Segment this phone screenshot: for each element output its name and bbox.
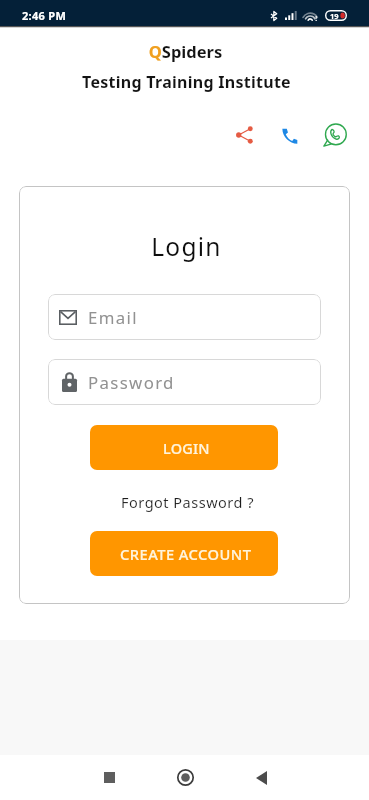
staticText: Password (88, 371, 175, 394)
button[interactable]: Home (156, 755, 214, 800)
button[interactable]: Back (232, 755, 290, 800)
button[interactable]: LOGIN (90, 425, 278, 470)
staticText: Login (21, 230, 350, 263)
staticText: QSpiders (1, 40, 369, 62)
staticText: 19 (330, 11, 339, 21)
staticText: Testing Training Institute (2, 71, 369, 93)
button[interactable]: Share (222, 113, 266, 157)
button[interactable]: Recents (80, 755, 138, 800)
button[interactable]: Call (267, 113, 311, 157)
staticText: 2:46 PM (22, 8, 67, 23)
button[interactable]: Password (48, 359, 321, 405)
button[interactable]: WhatsApp (312, 113, 356, 157)
staticText: CREATE ACCOUNT (120, 544, 252, 564)
button[interactable]: Email (48, 294, 321, 340)
button[interactable]: CREATE ACCOUNT (90, 531, 278, 576)
staticText: Email (88, 306, 138, 329)
button[interactable]: Forgot Password ? (22, 492, 350, 512)
staticText: LOGIN (163, 438, 210, 458)
